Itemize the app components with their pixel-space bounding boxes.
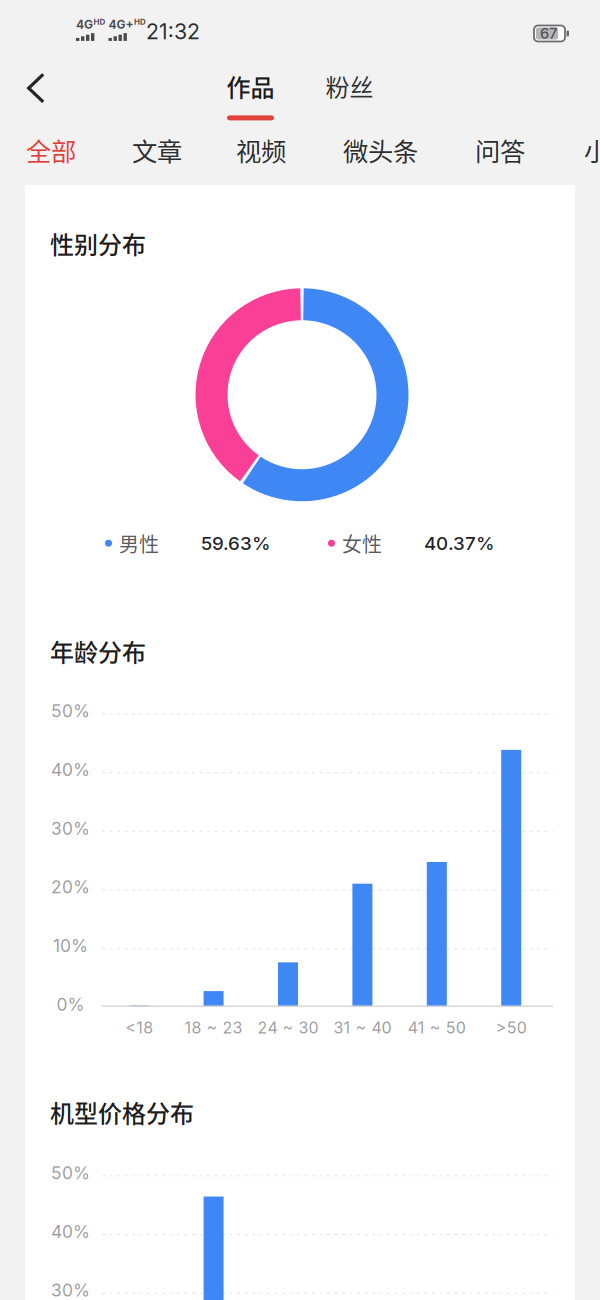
- staticText: 40%: [51, 1221, 90, 1242]
- staticText: 4G: [76, 17, 93, 32]
- button[interactable]: 问答: [463, 125, 537, 181]
- staticText: 31 ~ 40: [333, 1018, 391, 1037]
- staticText: 59.63%: [201, 532, 271, 554]
- staticText: 男性: [119, 529, 159, 558]
- staticText: 性别分布: [50, 226, 146, 261]
- staticText: 粉丝: [325, 69, 373, 103]
- staticText: 10%: [53, 935, 88, 956]
- staticText: 文章: [132, 132, 182, 168]
- staticText: 18 ~ 23: [185, 1018, 243, 1037]
- button[interactable]: 文章: [120, 125, 194, 181]
- staticText: 微头条: [343, 132, 418, 168]
- staticText: <18: [125, 1018, 153, 1037]
- staticText: 41 ~ 50: [408, 1018, 466, 1037]
- staticText: 4G+: [108, 17, 133, 32]
- button[interactable]: 全部: [14, 125, 88, 181]
- staticText: 作品: [226, 69, 274, 103]
- staticText: 视频: [236, 132, 286, 168]
- staticText: 40%: [51, 759, 90, 780]
- staticText: 问答: [475, 132, 525, 168]
- staticText: HD: [134, 17, 146, 27]
- staticText: 20%: [51, 877, 90, 898]
- staticText: 小: [584, 132, 600, 168]
- staticText: HD: [93, 17, 105, 27]
- staticText: 67: [540, 25, 557, 42]
- button[interactable]: Back: [0, 52, 65, 116]
- button[interactable]: 作品: [214, 52, 286, 126]
- button[interactable]: 视频: [224, 125, 298, 181]
- staticText: 全部: [26, 132, 76, 168]
- staticText: 24 ~ 30: [257, 1018, 318, 1037]
- staticText: 女性: [342, 529, 382, 558]
- staticText: 0%: [56, 994, 84, 1015]
- staticText: 30%: [51, 1280, 90, 1300]
- staticText: 40.37%: [424, 532, 495, 554]
- staticText: 50%: [51, 1162, 90, 1183]
- staticText: >50: [496, 1018, 527, 1037]
- staticText: 30%: [51, 818, 90, 839]
- button[interactable]: 粉丝: [313, 52, 385, 126]
- staticText: 50%: [51, 700, 90, 721]
- button[interactable]: 小: [572, 125, 600, 181]
- button[interactable]: 微头条: [331, 125, 430, 181]
- staticText: 机型价格分布: [50, 1095, 194, 1129]
- staticText: 年龄分布: [50, 634, 146, 668]
- staticText: 21:32: [146, 19, 200, 44]
